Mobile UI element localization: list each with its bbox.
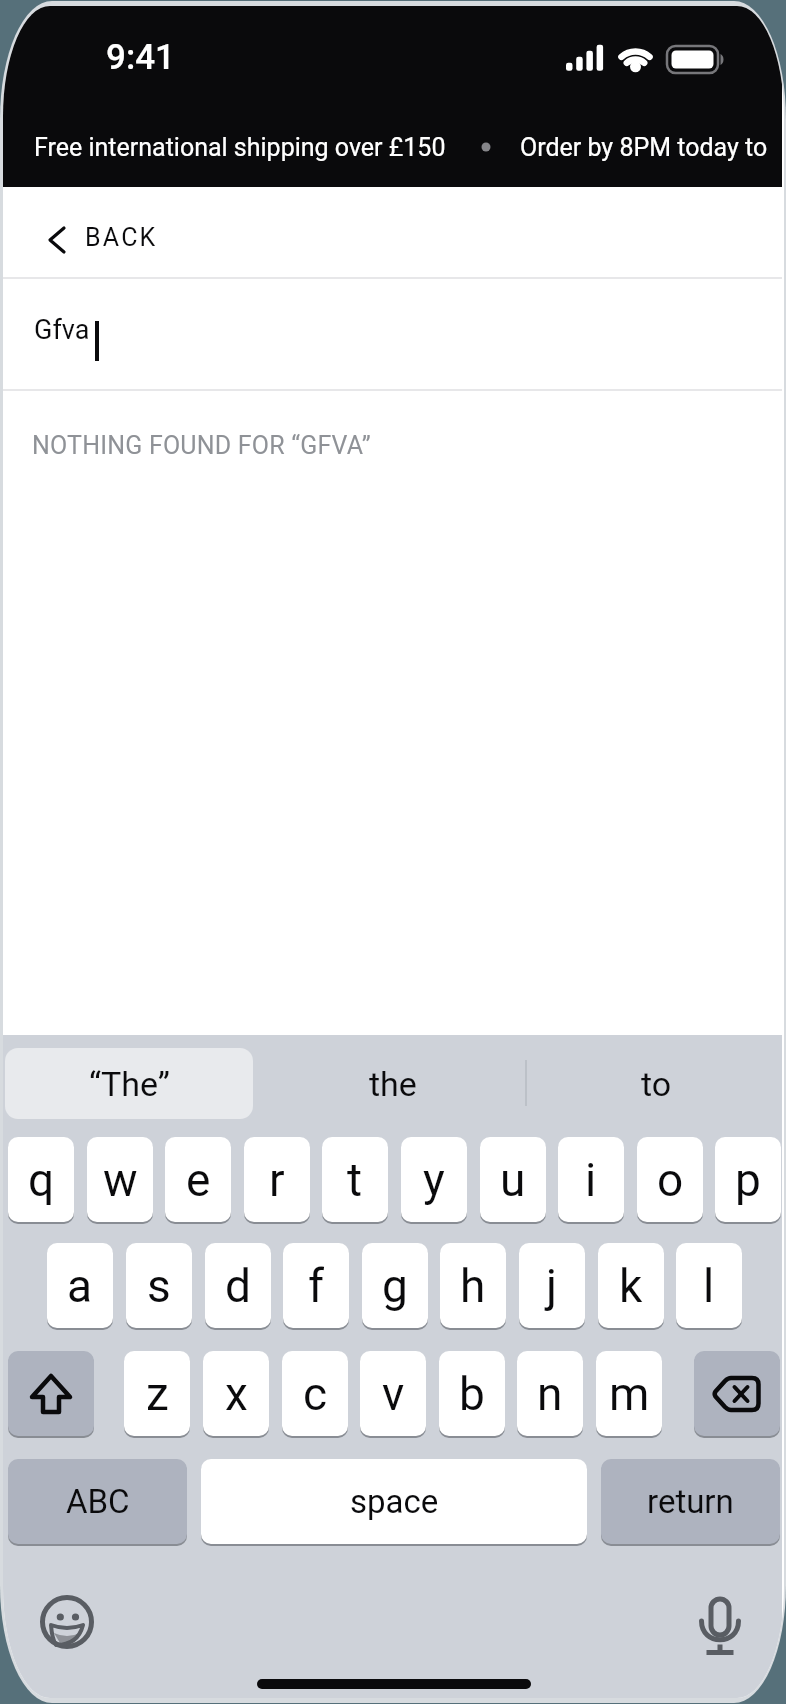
button[interactable]: d [205,1243,271,1328]
button[interactable] [40,1595,94,1649]
staticText: t [347,1153,363,1207]
staticText: return [647,1482,734,1521]
staticText: space [350,1482,439,1521]
button[interactable] [8,1351,94,1436]
button[interactable]: o [637,1137,703,1222]
button[interactable]: b [439,1351,505,1436]
staticText: d [225,1259,251,1313]
staticText: 9:41 [106,37,175,78]
button[interactable]: the [263,1048,523,1119]
button[interactable]: n [517,1351,583,1436]
button[interactable]: x [203,1351,269,1436]
button[interactable] [694,1351,780,1436]
button[interactable]: f [283,1243,349,1328]
button[interactable]: r [244,1137,310,1222]
staticText: Free international shipping over £150 [34,133,446,162]
button[interactable]: e [165,1137,231,1222]
button[interactable]: to [527,1048,784,1119]
staticText: z [146,1367,169,1421]
button[interactable]: k [598,1243,664,1328]
staticText: a [67,1259,93,1313]
staticText: BACK [85,223,158,252]
staticText: k [619,1259,643,1313]
button[interactable]: l [676,1243,742,1328]
staticText: i [585,1153,597,1207]
staticText: l [703,1259,715,1313]
staticText: n [537,1367,563,1421]
button[interactable]: c [282,1351,348,1436]
button[interactable]: BACK [3,187,782,277]
staticText: to [641,1064,672,1104]
button[interactable]: ABC [8,1459,187,1544]
button[interactable]: return [601,1459,780,1544]
staticText: the [369,1064,417,1104]
button[interactable]: “The” [5,1048,253,1119]
button[interactable]: i [558,1137,624,1222]
staticText: q [28,1153,55,1207]
button[interactable]: t [322,1137,388,1222]
button[interactable]: space [201,1459,587,1544]
staticText: e [186,1153,211,1207]
staticText: o [657,1153,684,1207]
staticText: ABC [66,1482,130,1521]
button[interactable]: a [47,1243,113,1328]
button[interactable]: u [480,1137,546,1222]
button[interactable]: v [360,1351,426,1436]
button[interactable]: h [440,1243,506,1328]
button[interactable]: s [126,1243,192,1328]
staticText: j [546,1259,558,1313]
staticText: b [459,1367,485,1421]
staticText: g [382,1259,408,1313]
staticText: r [269,1153,285,1207]
staticText: m [609,1367,650,1421]
staticText: Order by 8PM today to [520,133,768,162]
button[interactable]: z [124,1351,190,1436]
staticText: NOTHING FOUND FOR “GFVA” [32,431,371,460]
button[interactable] [698,1596,742,1655]
button[interactable]: w [87,1137,153,1222]
button[interactable]: j [519,1243,585,1328]
button[interactable]: Gfva [3,279,782,389]
staticText: “The” [89,1064,170,1104]
button[interactable]: y [401,1137,467,1222]
button[interactable]: q [8,1137,74,1222]
staticText: w [103,1153,138,1207]
staticText: v [382,1367,405,1421]
staticText: h [460,1259,486,1313]
button[interactable]: p [715,1137,781,1222]
button[interactable]: g [362,1243,428,1328]
staticText: y [423,1153,445,1207]
staticText: x [225,1367,248,1421]
staticText: c [303,1367,328,1421]
button[interactable]: m [596,1351,662,1436]
staticText: f [308,1259,324,1313]
staticText: Gfva [34,314,90,346]
staticText: u [500,1153,526,1207]
staticText: p [735,1153,761,1207]
staticText: s [147,1259,171,1313]
